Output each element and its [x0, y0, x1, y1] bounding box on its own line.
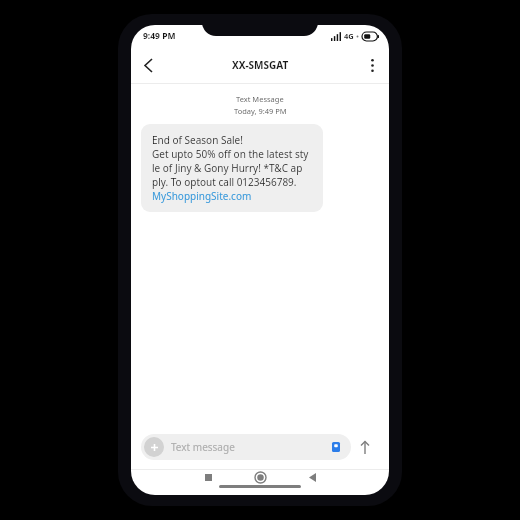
button[interactable]: Add attachment: [144, 437, 164, 457]
button[interactable]: Back: [299, 470, 325, 485]
button[interactable]: More options: [355, 48, 389, 82]
button[interactable]: End of Season Sale!: [141, 124, 323, 212]
staticText: le of Jiny & Gony Hurry! *T&C ap: [152, 161, 303, 175]
staticText: Text Message: [236, 94, 284, 104]
button[interactable]: Send: [351, 433, 379, 461]
staticText: ply. To optout call 0123456789.: [152, 175, 297, 189]
staticText: Today, 9:49 PM: [234, 106, 287, 116]
staticText: Get upto 50% off on the latest sty: [152, 147, 309, 161]
staticText: MyShoppingSite.com: [152, 189, 252, 203]
staticText: End of Season Sale!: [152, 133, 243, 147]
button[interactable]: SIM: [326, 437, 346, 457]
button[interactable]: Add attachment: [141, 434, 351, 460]
staticText: XX-SMSGAT: [232, 58, 289, 72]
button[interactable]: Recents: [195, 470, 221, 485]
button[interactable]: Back: [131, 48, 165, 82]
button[interactable]: Home: [247, 470, 273, 485]
staticText: Text message: [171, 440, 326, 454]
staticText: 4G: [344, 31, 354, 41]
staticText: 9:49 PM: [143, 30, 176, 42]
